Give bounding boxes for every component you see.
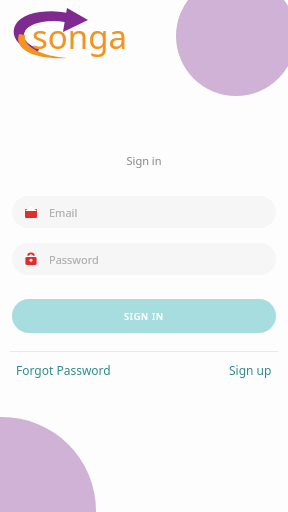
button[interactable]: SIGN IN: [12, 299, 276, 333]
staticText: Sign in: [0, 153, 288, 168]
staticText: Password: [49, 252, 99, 267]
button[interactable]: Email: [12, 196, 276, 228]
button[interactable]: Password: [12, 243, 276, 275]
button[interactable]: Sign up: [229, 362, 272, 378]
staticText: Forgot Password: [16, 362, 111, 378]
staticText: Sign up: [229, 362, 272, 378]
staticText: songa: [32, 14, 127, 59]
staticText: SIGN IN: [124, 310, 164, 322]
button[interactable]: Forgot Password: [16, 362, 111, 378]
staticText: Email: [49, 205, 78, 220]
